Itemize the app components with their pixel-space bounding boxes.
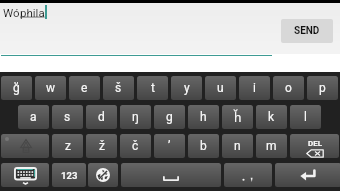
staticText: a — [30, 110, 37, 124]
staticText: m — [266, 139, 277, 153]
staticText: p — [319, 81, 326, 95]
button[interactable]: o — [273, 76, 304, 100]
staticText: z — [65, 139, 71, 153]
staticText: o — [285, 81, 292, 95]
button[interactable]: ȟ — [222, 105, 253, 129]
button[interactable]: e — [69, 76, 100, 100]
button[interactable]: a — [18, 105, 49, 129]
button[interactable]: s — [52, 105, 83, 129]
button[interactable]: i — [239, 76, 270, 100]
button[interactable]: l — [290, 105, 321, 129]
staticText: č — [132, 139, 139, 153]
staticText: e — [81, 81, 88, 95]
staticText: b — [200, 139, 207, 153]
button[interactable]: š — [103, 76, 134, 100]
staticText: k — [268, 110, 275, 124]
staticText: d — [98, 110, 105, 124]
staticText: phila — [20, 6, 45, 19]
staticText: l — [304, 110, 307, 124]
button[interactable]: b — [188, 134, 219, 158]
staticText: i — [253, 81, 256, 95]
button[interactable]: d — [86, 105, 117, 129]
button[interactable]: t — [137, 76, 168, 100]
button[interactable]: ŋ — [120, 105, 151, 129]
button[interactable]: n — [222, 134, 253, 158]
staticText: SEND — [294, 25, 320, 37]
button[interactable]: h — [188, 105, 219, 129]
staticText: u — [217, 81, 224, 95]
button[interactable]: ğ — [1, 76, 32, 100]
button[interactable]: Enter — [275, 163, 340, 187]
button[interactable]: m — [256, 134, 287, 158]
button[interactable]: g — [154, 105, 185, 129]
button[interactable]: Comma and period — [224, 163, 272, 187]
staticText: s — [64, 110, 71, 124]
staticText: t — [151, 81, 155, 95]
button[interactable]: ’ — [154, 134, 185, 158]
staticText: 123 — [61, 170, 78, 181]
staticText: h — [200, 110, 207, 124]
button[interactable]: w — [35, 76, 66, 100]
staticText: ’ — [168, 139, 171, 153]
button[interactable]: Delete — [290, 134, 339, 158]
button[interactable]: u — [205, 76, 236, 100]
staticText: w — [46, 81, 56, 95]
staticText: ž — [99, 139, 105, 153]
staticText: š — [115, 81, 122, 95]
button[interactable]: Change language — [88, 163, 118, 187]
staticText: n — [234, 139, 241, 153]
staticText: Wó — [3, 6, 20, 19]
button[interactable]: z — [52, 134, 83, 158]
staticText: g — [166, 110, 173, 124]
staticText: ğ — [13, 81, 20, 95]
staticText: ŋ — [132, 110, 139, 124]
button[interactable]: k — [256, 105, 287, 129]
button[interactable]: SEND — [281, 19, 333, 43]
button[interactable]: y — [171, 76, 202, 100]
button[interactable]: 123 — [52, 163, 86, 187]
button[interactable]: Shift — [1, 134, 49, 158]
button[interactable]: p — [307, 76, 338, 100]
button[interactable]: Space — [121, 163, 221, 187]
staticText: ȟ — [234, 109, 242, 125]
button[interactable]: ž — [86, 134, 117, 158]
button[interactable]: č — [120, 134, 151, 158]
staticText: y — [184, 81, 190, 95]
staticText: DEL — [308, 139, 323, 148]
button[interactable]: Hide keyboard — [1, 163, 49, 187]
